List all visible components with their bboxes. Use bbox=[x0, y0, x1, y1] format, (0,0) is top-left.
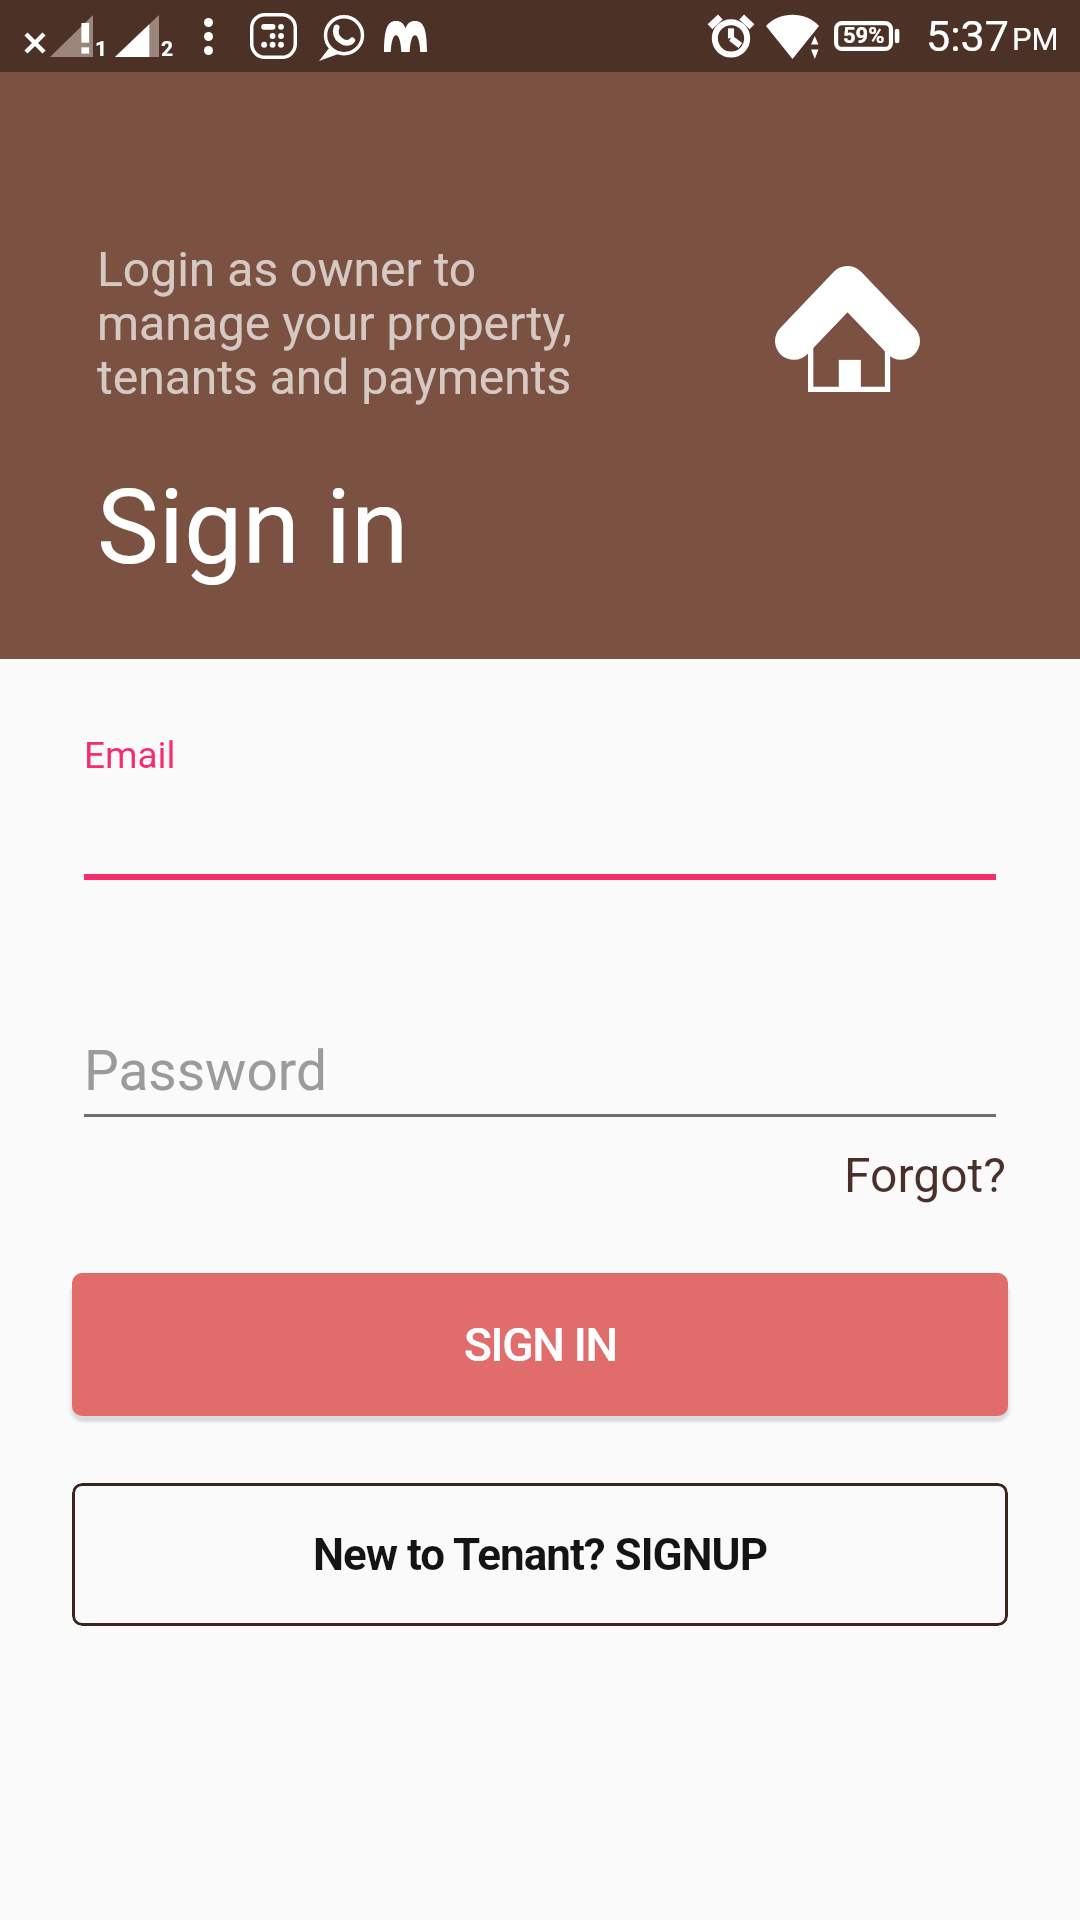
staticText: SIGN IN bbox=[464, 1318, 617, 1372]
button[interactable]: Email input field bbox=[84, 789, 996, 880]
staticText: New to Tenant? SIGNUP bbox=[313, 1529, 767, 1581]
button[interactable]: New to Tenant? SIGNUP bbox=[72, 1483, 1008, 1626]
button[interactable]: Password bbox=[84, 1029, 996, 1117]
staticText: Login as owner to manage your property, … bbox=[97, 241, 572, 405]
button[interactable]: Forgot? bbox=[830, 1139, 1020, 1211]
staticText: PM bbox=[1012, 21, 1059, 57]
staticText: Password bbox=[84, 1039, 327, 1103]
staticText: Sign in bbox=[97, 467, 409, 589]
staticText: Forgot? bbox=[844, 1147, 1006, 1203]
staticText: 2 bbox=[161, 37, 174, 62]
staticText: Email bbox=[84, 734, 176, 777]
button[interactable]: SIGN IN bbox=[72, 1273, 1008, 1416]
staticText: 5:37 bbox=[926, 11, 1009, 61]
staticText: 59% bbox=[843, 23, 885, 49]
staticText: 1 bbox=[95, 37, 108, 62]
